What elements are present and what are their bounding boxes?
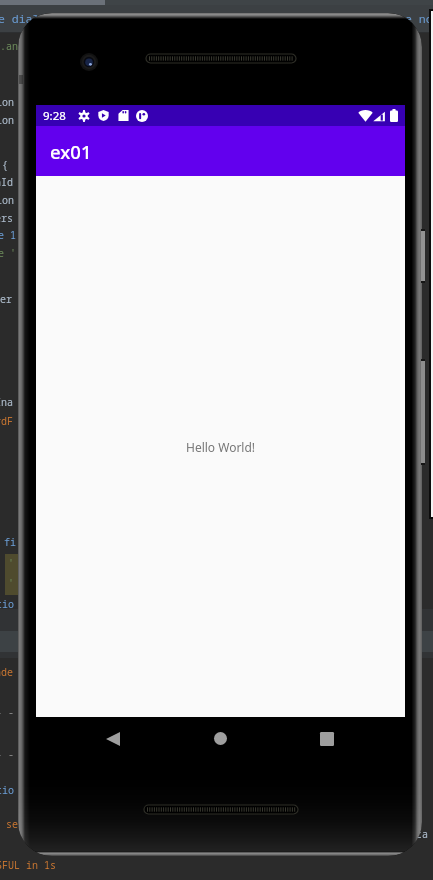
staticText: mer [0, 292, 12, 306]
button[interactable]: Back [91, 717, 134, 760]
staticText: - - - [0, 747, 26, 761]
button[interactable]: Recent apps [305, 717, 348, 760]
staticText: ca [416, 827, 428, 841]
staticText: { [2, 158, 8, 172]
staticText: - - - [0, 705, 26, 719]
staticText: SFUL in 1s [0, 858, 56, 872]
staticText: ' a [8, 576, 26, 590]
staticText: ion [0, 113, 14, 127]
staticText: nde [0, 665, 13, 679]
staticText: tio [0, 783, 14, 797]
staticText: Ena [0, 395, 13, 409]
staticText: ' a [8, 556, 26, 570]
staticText: 9:28 [43, 108, 66, 124]
staticText: ex01 [50, 139, 92, 164]
staticText: sea [6, 817, 24, 831]
staticText: fi [4, 535, 16, 549]
staticText: e ' [0, 246, 16, 260]
staticText: .an [0, 39, 18, 53]
staticText: ers [0, 211, 13, 225]
staticText: ion [0, 95, 14, 109]
staticText: e dialo [0, 11, 47, 27]
staticText: nId [0, 175, 13, 189]
button[interactable]: ex01 [36, 126, 405, 176]
button[interactable]: Home [199, 717, 242, 760]
staticText: e no [405, 11, 433, 27]
staticText: ion [0, 193, 14, 207]
staticText: Hello World! [186, 439, 256, 455]
staticText: tio [0, 597, 14, 611]
staticText: e 1 [0, 228, 16, 242]
staticText: rdF [0, 414, 13, 428]
